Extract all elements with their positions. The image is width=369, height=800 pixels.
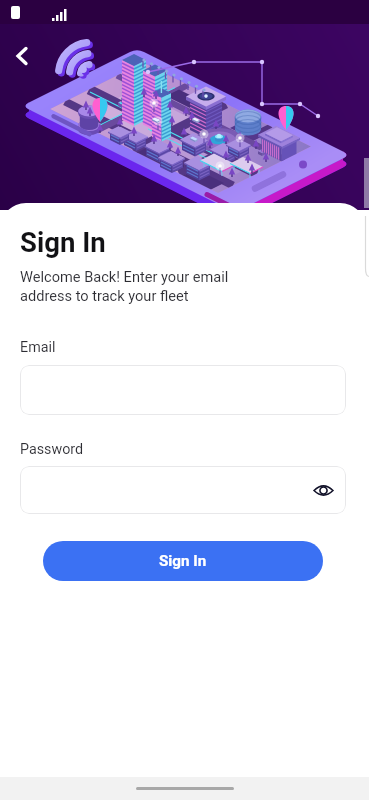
staticText: Email	[20, 339, 56, 356]
button[interactable]: Back	[6, 40, 38, 72]
staticText: Sign In	[159, 552, 207, 570]
staticText: Sign In	[20, 226, 106, 258]
button[interactable]: Show password	[20, 466, 346, 514]
staticText: Password	[20, 441, 84, 458]
button[interactable]: Show password	[308, 475, 338, 505]
button[interactable]	[20, 365, 346, 415]
staticText: Welcome Back! Enter your email address t…	[20, 268, 229, 305]
button[interactable]: Sign In	[43, 541, 323, 581]
